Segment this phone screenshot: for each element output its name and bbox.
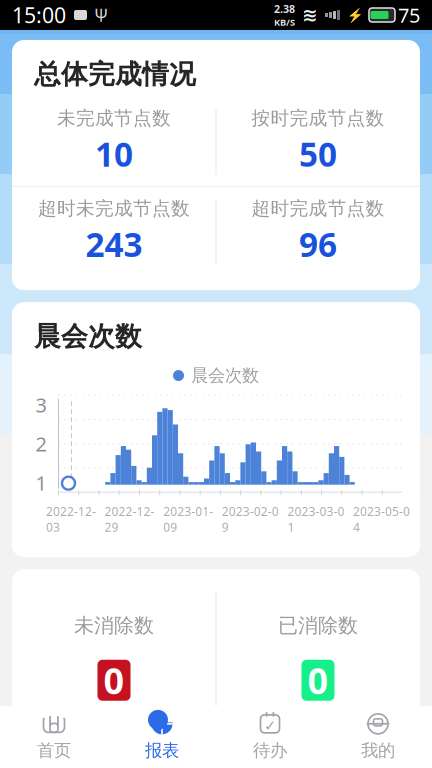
staticText: 10 (95, 132, 133, 176)
staticText: 晨会次数 (191, 365, 259, 386)
staticText: 243 (85, 222, 142, 266)
staticText: 15:00 (12, 1, 66, 29)
staticText: 超时完成节点数 (251, 197, 384, 220)
staticText: 1 (35, 469, 46, 496)
staticText: 2.38 (274, 2, 295, 16)
staticText: 按时完成节点数 (251, 107, 384, 130)
staticText: 2023-02-09 (222, 503, 279, 535)
staticText: 2023-05-04 (353, 503, 410, 535)
staticText: 未消除数 (74, 613, 154, 638)
staticText: 首页 (37, 740, 71, 761)
staticText: 2022-12-29 (105, 503, 155, 535)
staticText: ⚡ (347, 7, 364, 23)
staticText: 未完成节点数 (57, 107, 171, 130)
staticText: 待办 (253, 740, 287, 761)
staticText: 2023-01-09 (163, 503, 213, 535)
staticText: 已消除数 (278, 613, 358, 638)
button[interactable]: 首页 (0, 709, 108, 765)
staticText: KB/S (274, 16, 295, 28)
staticText: 50 (299, 132, 337, 176)
staticText: 2022-12-03 (46, 503, 96, 535)
staticText: 我的 (361, 740, 395, 761)
button[interactable]: 报表 (108, 709, 216, 765)
staticText: 96 (299, 222, 337, 266)
staticText: 2 (35, 430, 46, 457)
staticText: 3 (35, 391, 46, 418)
staticText: 超时未完成节点数 (38, 197, 190, 220)
staticText: 总体完成情况 (34, 58, 196, 91)
button[interactable]: 我的 (324, 709, 432, 765)
staticText: 报表 (145, 740, 179, 761)
staticText: 晨会次数 (34, 320, 142, 353)
staticText: 2023-03-01 (287, 503, 344, 535)
staticText: 0 (103, 656, 124, 704)
staticText: Ψ (94, 3, 108, 26)
staticText: 75 (398, 2, 420, 28)
button[interactable]: ✓ (216, 709, 324, 765)
staticText: 0 (307, 656, 328, 704)
staticText: ≋ (302, 4, 318, 26)
staticText: ✓ (264, 717, 276, 734)
